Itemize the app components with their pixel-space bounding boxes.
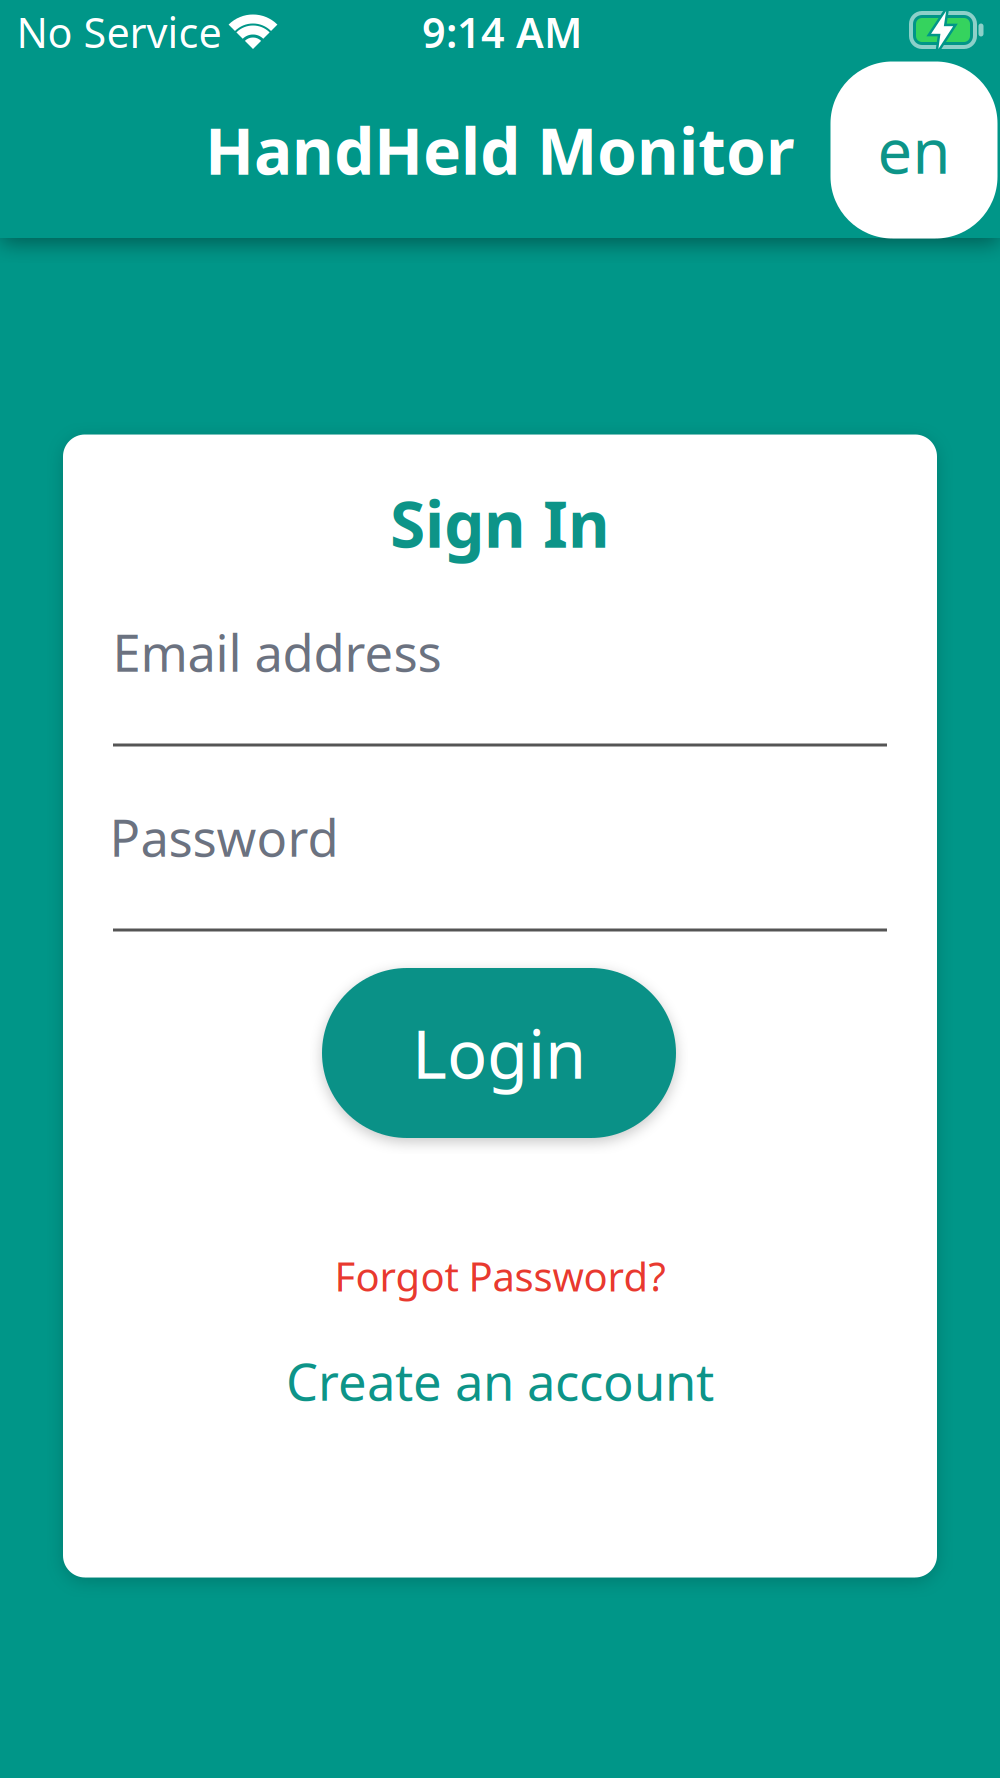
staticText: Password: [109, 803, 338, 871]
staticText: HandHeld Monitor: [205, 107, 795, 192]
staticText: Forgot Password?: [334, 1249, 665, 1302]
button[interactable]: Login: [322, 968, 676, 1138]
staticText: Login: [412, 1009, 586, 1097]
staticText: Sign In: [390, 480, 610, 565]
staticText: Email address: [112, 618, 441, 686]
button[interactable]: en: [830, 61, 997, 238]
staticText: Create an account: [286, 1347, 714, 1415]
button[interactable]: Create an account: [286, 1347, 714, 1415]
staticText: en: [877, 109, 950, 191]
staticText: No Service: [16, 5, 221, 59]
button[interactable]: Forgot Password?: [334, 1249, 665, 1302]
staticText: 9:14 AM: [422, 5, 582, 59]
